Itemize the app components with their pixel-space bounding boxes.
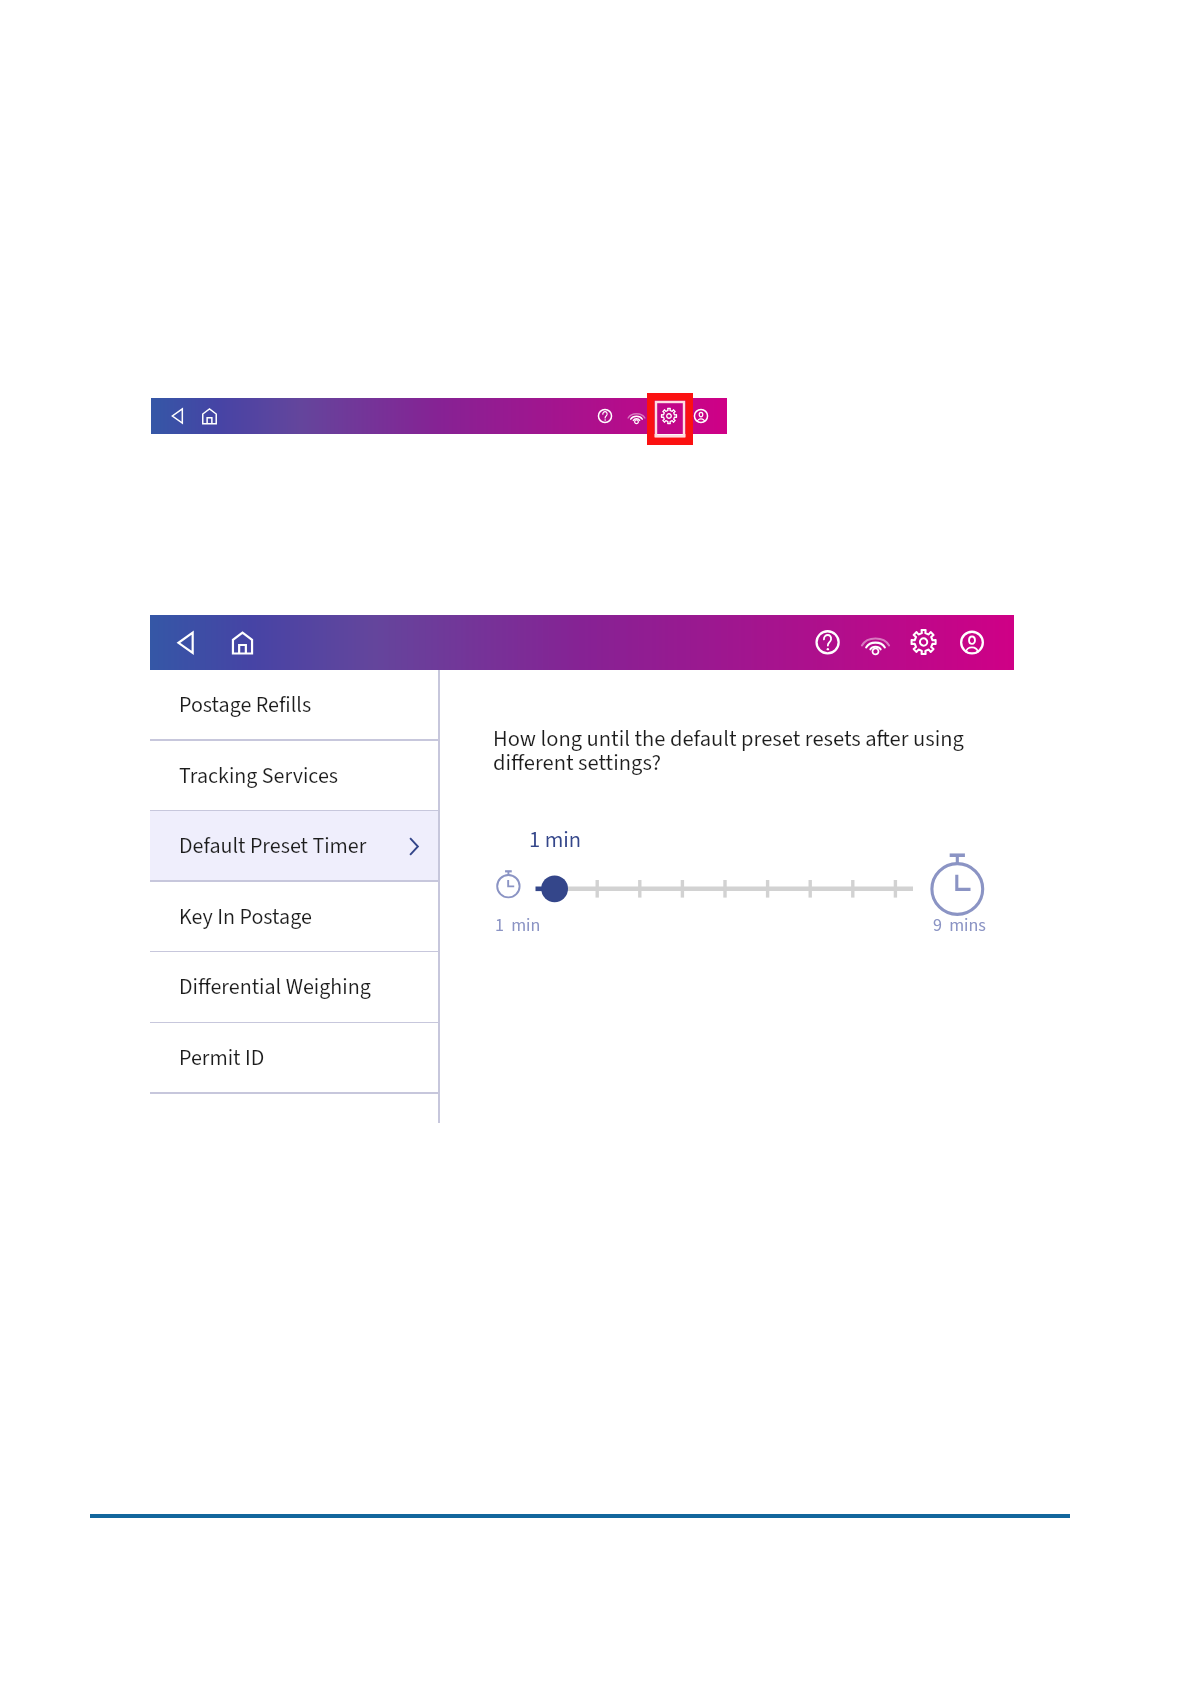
staticText: Differential Weighing [179, 971, 371, 1002]
staticText: 1 min [529, 824, 582, 856]
staticText: Key In Postage [179, 901, 312, 932]
button[interactable]: Help [808, 615, 848, 670]
button[interactable]: Differential Weighing [150, 952, 438, 1023]
staticText: Permit ID [179, 1042, 265, 1073]
staticText: How long until the default preset resets… [493, 723, 971, 779]
staticText: Tracking Services [179, 760, 339, 791]
button[interactable]: Permit ID [150, 1023, 438, 1094]
button[interactable]: Back [168, 615, 208, 670]
button[interactable]: Home [223, 615, 263, 670]
staticText: Default Preset Timer [179, 830, 367, 861]
staticText: Postage Refills [179, 689, 312, 720]
button[interactable]: Tracking Services [150, 741, 438, 812]
button[interactable]: Settings [904, 615, 944, 670]
button[interactable]: Default preset timer slider [480, 845, 1010, 935]
button[interactable]: Wi-Fi [856, 615, 896, 670]
button[interactable]: Key In Postage [150, 882, 438, 953]
staticText: 9 mins [933, 913, 986, 939]
button[interactable]: Account [952, 615, 992, 670]
staticText: 1 min [495, 913, 541, 939]
button[interactable]: Postage Refills [150, 670, 438, 741]
button[interactable]: Default Preset Timer [150, 811, 438, 882]
